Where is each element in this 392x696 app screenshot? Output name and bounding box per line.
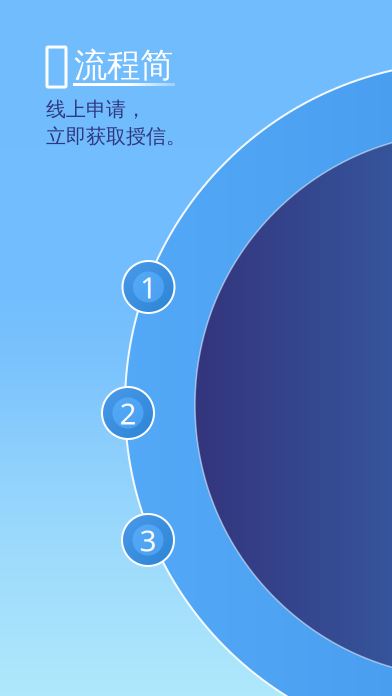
button[interactable]: 2: [100, 385, 156, 441]
staticText: 1: [140, 267, 157, 306]
button[interactable]: 3: [120, 512, 176, 568]
staticText: 线上申请，: [46, 97, 146, 122]
staticText: 立即获取授信。: [46, 124, 186, 149]
staticText: 2: [119, 393, 136, 432]
button[interactable]: 1: [120, 259, 176, 315]
staticText: 流程简: [74, 45, 173, 86]
staticText: 3: [139, 520, 156, 559]
